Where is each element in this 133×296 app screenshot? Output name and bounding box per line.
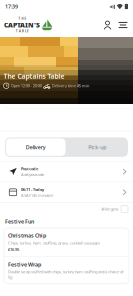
staticText: Allergens <box>101 206 118 212</box>
button[interactable]: Postcode <box>0 162 133 182</box>
staticText: Delivery <box>26 144 46 151</box>
staticText: Delivery time 45 min <box>52 83 89 88</box>
button[interactable]: Account <box>100 14 115 36</box>
staticText: Double wrap stuffed with chips, turkey h… <box>8 269 123 280</box>
staticText: The Captains Table <box>3 72 64 80</box>
staticText: ASAP (45 minutes) <box>21 193 53 198</box>
button[interactable]: Delivery <box>5 137 66 157</box>
button[interactable]: 06:11 - Today <box>0 182 133 202</box>
staticText: T H E <box>18 17 25 20</box>
staticText: Festive Wrap <box>8 261 41 268</box>
button[interactable]: Christmas Chip <box>4 228 129 256</box>
button[interactable]: Pick-up <box>66 137 128 157</box>
staticText: Christmas Chip <box>8 232 46 239</box>
staticText: £16.95 <box>8 247 19 252</box>
button[interactable]: Allergens <box>121 205 128 212</box>
button[interactable]: Festive Wrap <box>4 257 129 284</box>
staticText: Open 12:00 - 20:00 <box>11 83 42 88</box>
staticText: Pick-up <box>88 144 106 151</box>
staticText: CAPTAIN'S <box>4 21 40 29</box>
staticText: 17:39 <box>5 3 18 10</box>
staticText: Festive Fun <box>5 218 34 225</box>
button[interactable]: Menu <box>115 14 131 36</box>
staticText: Chips, turkey, ham, stuffing, gravy, coc… <box>8 240 100 246</box>
staticText: T A B L E <box>16 29 28 33</box>
staticText: Postcode <box>21 166 38 171</box>
staticText: 06:11 - Today <box>21 187 44 192</box>
staticText: Add postcode <box>21 172 44 177</box>
